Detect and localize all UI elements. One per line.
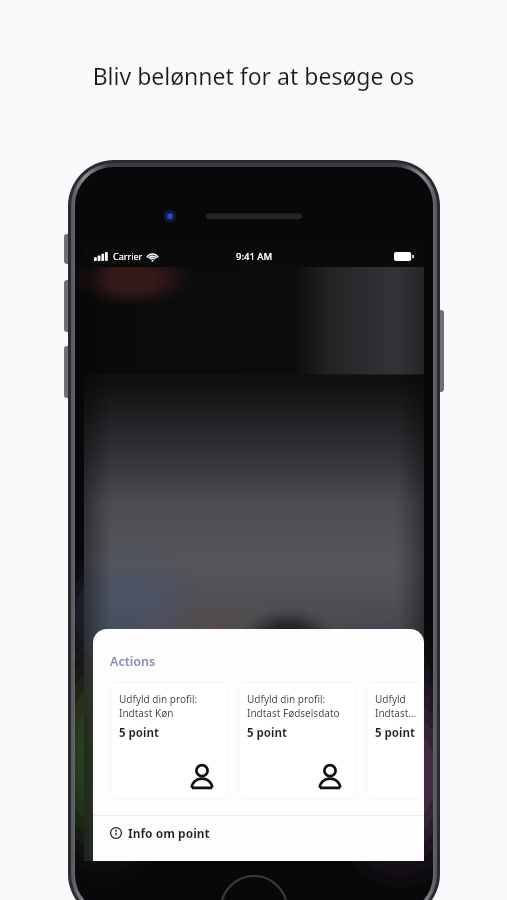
button[interactable]: Udfyld din profil: xyxy=(110,682,228,799)
button[interactable]: Info om point xyxy=(93,816,424,850)
staticText: 5 point xyxy=(247,725,287,741)
staticText: Carrier xyxy=(113,250,143,262)
button[interactable]: Udfyld din p xyxy=(366,682,424,799)
staticText: Indtast Fødselsdato xyxy=(247,706,340,720)
staticText: Udfyld din profil: xyxy=(247,692,326,706)
staticText: Udfyld din p xyxy=(375,692,418,706)
staticText: Indtast... xyxy=(375,706,417,720)
button[interactable]: Udfyld din profil: xyxy=(238,682,356,799)
staticText: 5 point xyxy=(119,725,159,741)
staticText: Actions xyxy=(110,653,156,670)
staticText: 5 point xyxy=(375,725,415,741)
staticText: 9:41 AM xyxy=(236,250,273,263)
staticText: Indtast Køn xyxy=(119,706,174,720)
staticText: Bliv belønnet for at besøge os xyxy=(0,60,507,91)
staticText: Info om point xyxy=(128,825,210,841)
staticText: Udfyld din profil: xyxy=(119,692,198,706)
